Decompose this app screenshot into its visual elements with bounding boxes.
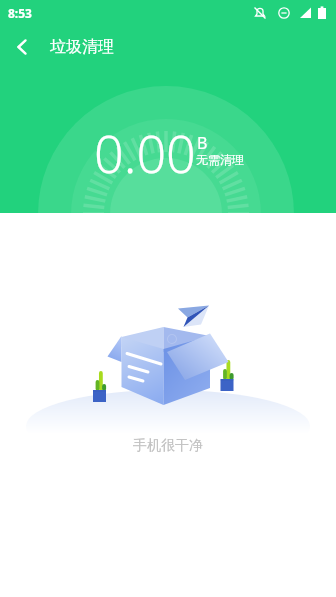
staticText: 手机很干净 — [133, 437, 203, 455]
staticText: 垃圾清理 — [50, 37, 114, 57]
button[interactable]: Back — [0, 26, 44, 68]
staticText: 无需清理 — [196, 152, 244, 167]
staticText: B — [197, 132, 208, 154]
staticText: 8:53 — [8, 5, 32, 21]
staticText: 0.00 — [94, 117, 196, 188]
